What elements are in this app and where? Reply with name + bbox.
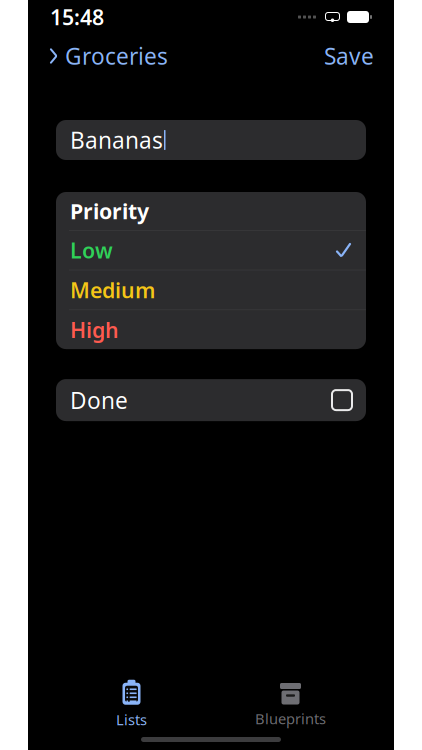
staticText: Groceries bbox=[65, 41, 168, 71]
staticText: Medium bbox=[70, 276, 155, 304]
staticText: High bbox=[70, 315, 119, 344]
staticText: Priority bbox=[70, 197, 149, 225]
button[interactable]: Blueprints bbox=[211, 678, 370, 732]
staticText: Save bbox=[324, 41, 374, 71]
staticText: Bananas bbox=[70, 125, 163, 155]
button[interactable]: Lists bbox=[52, 677, 211, 733]
staticText: Low bbox=[70, 236, 113, 264]
button[interactable]: Done bbox=[56, 379, 366, 421]
staticText: Done bbox=[70, 385, 128, 415]
staticText: Blueprints bbox=[255, 709, 326, 728]
button[interactable]: Save bbox=[314, 33, 374, 79]
button[interactable]: Medium bbox=[56, 270, 366, 309]
button[interactable]: Low bbox=[56, 231, 366, 270]
staticText: Lists bbox=[116, 710, 147, 729]
button[interactable]: High bbox=[56, 310, 366, 349]
staticText: 15:48 bbox=[50, 3, 104, 31]
button[interactable]: Groceries bbox=[48, 33, 176, 79]
